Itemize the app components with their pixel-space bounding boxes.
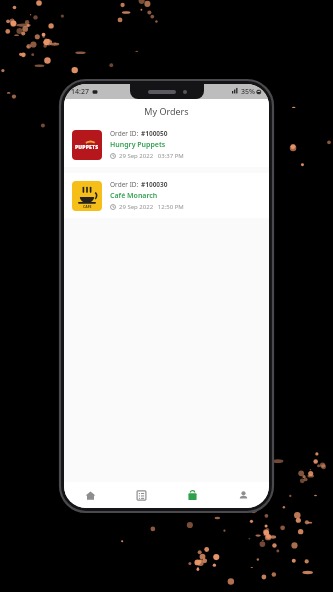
staticText: 29 Sep 2022 03:37 PM bbox=[119, 152, 184, 160]
staticText: Order ID: bbox=[110, 180, 141, 189]
staticText: Hungry Puppets bbox=[110, 140, 166, 150]
staticText: 14:27 bbox=[71, 87, 89, 97]
staticText: Café Monarch bbox=[110, 191, 158, 201]
button[interactable]: CAFE bbox=[64, 173, 269, 218]
button[interactable]: My Orders bbox=[167, 482, 218, 508]
staticText: #100030 bbox=[141, 180, 168, 189]
button[interactable]: Profile bbox=[218, 482, 269, 508]
staticText: My Orders bbox=[144, 105, 189, 117]
button[interactable]: PUPPETS bbox=[64, 122, 269, 167]
staticText: 35% bbox=[241, 87, 255, 97]
button[interactable]: Home bbox=[64, 482, 116, 508]
staticText: PUPPETS bbox=[75, 144, 99, 151]
staticText: 29 Sep 2022 12:50 PM bbox=[119, 203, 184, 211]
staticText: #100050 bbox=[141, 129, 168, 138]
staticText: CAFE bbox=[83, 204, 92, 209]
button[interactable]: Orders list bbox=[116, 482, 167, 508]
staticText: Order ID: bbox=[110, 129, 141, 138]
